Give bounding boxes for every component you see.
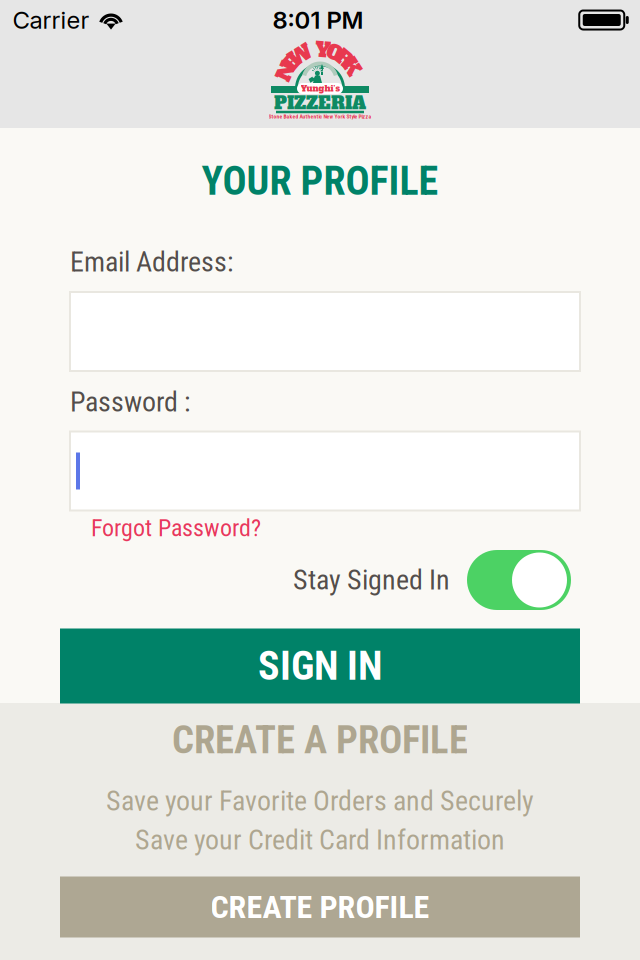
- button[interactable]: SIGN IN: [60, 628, 580, 703]
- staticText: K: [343, 53, 360, 81]
- staticText: N: [277, 58, 296, 85]
- staticText: Carrier: [12, 5, 89, 34]
- staticText: Stone Baked Authentic New York Style Piz…: [268, 113, 371, 120]
- staticText: Save your Credit Card Information: [135, 824, 505, 856]
- staticText: PIZZERIA: [274, 91, 366, 115]
- staticText: Email Address:: [70, 246, 234, 278]
- staticText: W: [288, 42, 312, 69]
- staticText: CREATE A PROFILE: [172, 717, 468, 763]
- staticText: Yunghi's: [300, 83, 339, 94]
- staticText: 8:01 PM: [272, 5, 363, 34]
- staticText: Stay Signed In: [293, 564, 450, 596]
- staticText: E: [285, 49, 299, 77]
- staticText: Password :: [70, 386, 191, 418]
- staticText: Y: [315, 36, 331, 64]
- staticText: R: [336, 45, 352, 72]
- staticText: YOUR PROFILE: [201, 158, 438, 204]
- button[interactable]: CREATE PROFILE: [60, 876, 580, 937]
- button[interactable]: Forgot Password?: [91, 512, 331, 544]
- staticText: O: [326, 39, 342, 67]
- staticText: CREATE PROFILE: [210, 888, 429, 926]
- button[interactable]: Stay Signed In: [467, 550, 571, 610]
- staticText: SIGN IN: [258, 643, 382, 689]
- staticText: Forgot Password?: [91, 514, 261, 542]
- staticText: Save your Favorite Orders and Securely: [106, 785, 534, 817]
